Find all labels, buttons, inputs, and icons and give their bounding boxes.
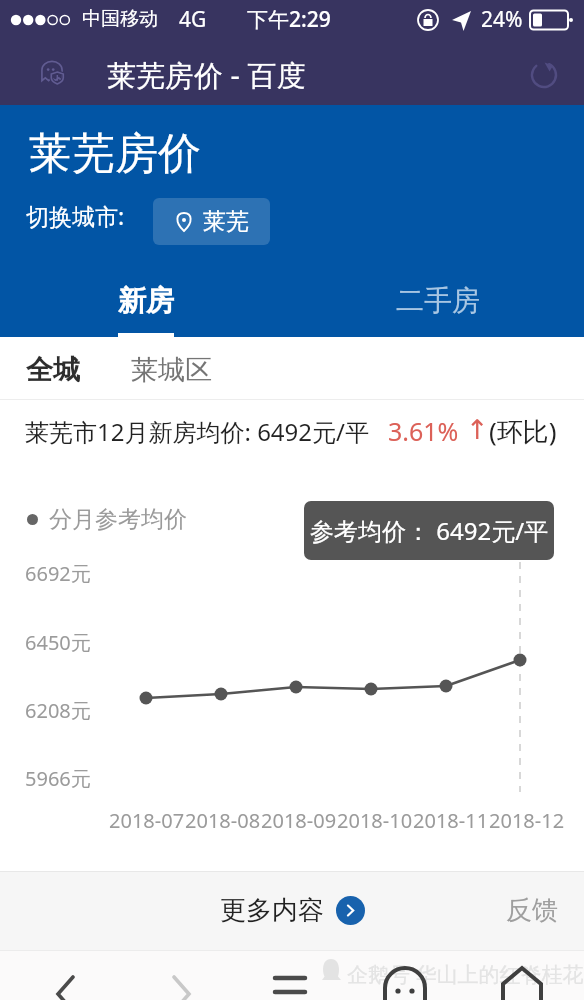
button[interactable]: 莱城区 [131, 353, 212, 387]
button[interactable]: Refresh [526, 57, 562, 93]
button[interactable]: Menu [233, 950, 350, 1000]
button[interactable]: 二手房 [292, 275, 584, 337]
staticText: 新房 [118, 283, 174, 318]
staticText: 24% [481, 5, 523, 34]
button[interactable]: 反馈 [506, 894, 558, 927]
staticText: 2018-07 [109, 807, 185, 834]
button[interactable]: Incognito [350, 950, 467, 1000]
button[interactable]: Forward [116, 950, 233, 1000]
staticText: (环比) [489, 413, 557, 449]
staticText: 二手房 [396, 283, 480, 318]
staticText: 莱芜房价 - 百度 [107, 55, 306, 95]
staticText: 5966元 [25, 765, 91, 792]
staticText: 2018-08 [185, 807, 261, 834]
staticText: 反馈 [506, 894, 558, 927]
staticText: 2018-12 [489, 807, 565, 834]
staticText: 3.61% [388, 414, 459, 448]
staticText: 分月参考均价 [49, 505, 187, 534]
staticText: 莱芜市12月新房均价: 6492元/平 [25, 415, 369, 448]
button[interactable]: Back [0, 950, 116, 1000]
staticText: 6692元 [25, 560, 91, 587]
staticText: 6450元 [25, 629, 91, 656]
staticText: 2018-11 [413, 807, 489, 834]
staticText: ↑ [466, 414, 489, 445]
staticText: 更多内容 [220, 894, 324, 927]
staticText: 莱芜 [203, 207, 249, 236]
button[interactable]: 新房 [0, 275, 292, 337]
staticText: 切换城市: [26, 200, 125, 231]
button[interactable]: 更多内容 [220, 894, 365, 927]
staticText: 莱芜房价 [29, 127, 201, 181]
staticText: 2018-09 [261, 807, 337, 834]
staticText: 2018-10 [337, 807, 413, 834]
staticText: 莱城区 [131, 353, 212, 387]
button[interactable]: 全城 [26, 353, 80, 387]
staticText: 中国移动 [82, 7, 158, 31]
staticText: 企鹅号 华山上的红脊桂花 [347, 960, 584, 989]
button[interactable]: 莱芜 [153, 198, 270, 245]
button[interactable]: Incognito mode [34, 54, 70, 90]
button[interactable]: Home [467, 950, 584, 1000]
staticText: 6208元 [25, 697, 91, 724]
staticText: 下午2:29 [247, 5, 331, 34]
staticText: 参考均价： 6492元/平 [310, 514, 549, 547]
staticText: 全城 [26, 353, 80, 387]
staticText: 4G [179, 5, 207, 34]
